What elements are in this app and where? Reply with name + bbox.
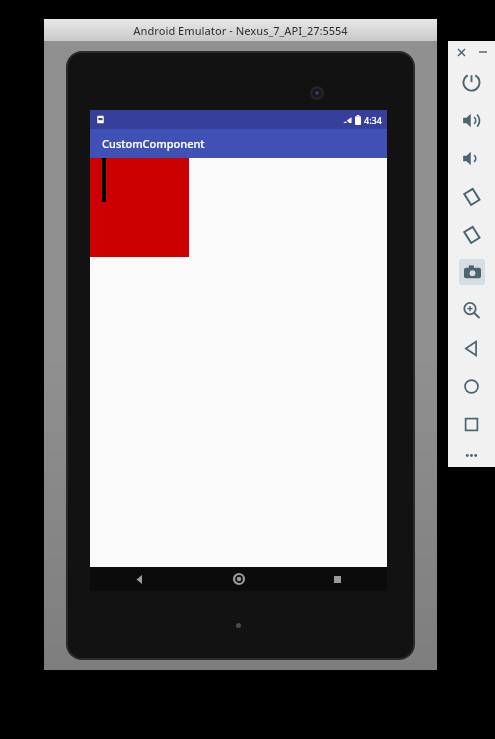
button[interactable]: Home — [189, 567, 288, 591]
button[interactable]: Recent apps — [448, 405, 495, 443]
button[interactable]: Power — [448, 63, 495, 101]
button[interactable]: Volume down — [448, 139, 495, 177]
button[interactable]: Home — [448, 367, 495, 405]
staticText: CustomComponent — [102, 136, 205, 151]
button[interactable]: Volume up — [448, 101, 495, 139]
button[interactable]: Back — [90, 567, 189, 591]
button[interactable]: Zoom — [448, 291, 495, 329]
button[interactable]: Recent apps — [288, 567, 387, 591]
button[interactable]: Back — [448, 329, 495, 367]
button[interactable]: Minimize — [476, 45, 490, 59]
button[interactable]: Rotate left — [448, 177, 495, 215]
button[interactable]: Rotate right — [448, 215, 495, 253]
staticText: 4:34 — [364, 114, 382, 126]
button[interactable]: Take screenshot — [448, 253, 495, 291]
button[interactable]: Close — [454, 45, 468, 59]
staticText: Android Emulator - Nexus_7_API_27:5554 — [133, 23, 348, 38]
button[interactable] — [90, 158, 189, 257]
button[interactable]: More — [448, 443, 495, 467]
